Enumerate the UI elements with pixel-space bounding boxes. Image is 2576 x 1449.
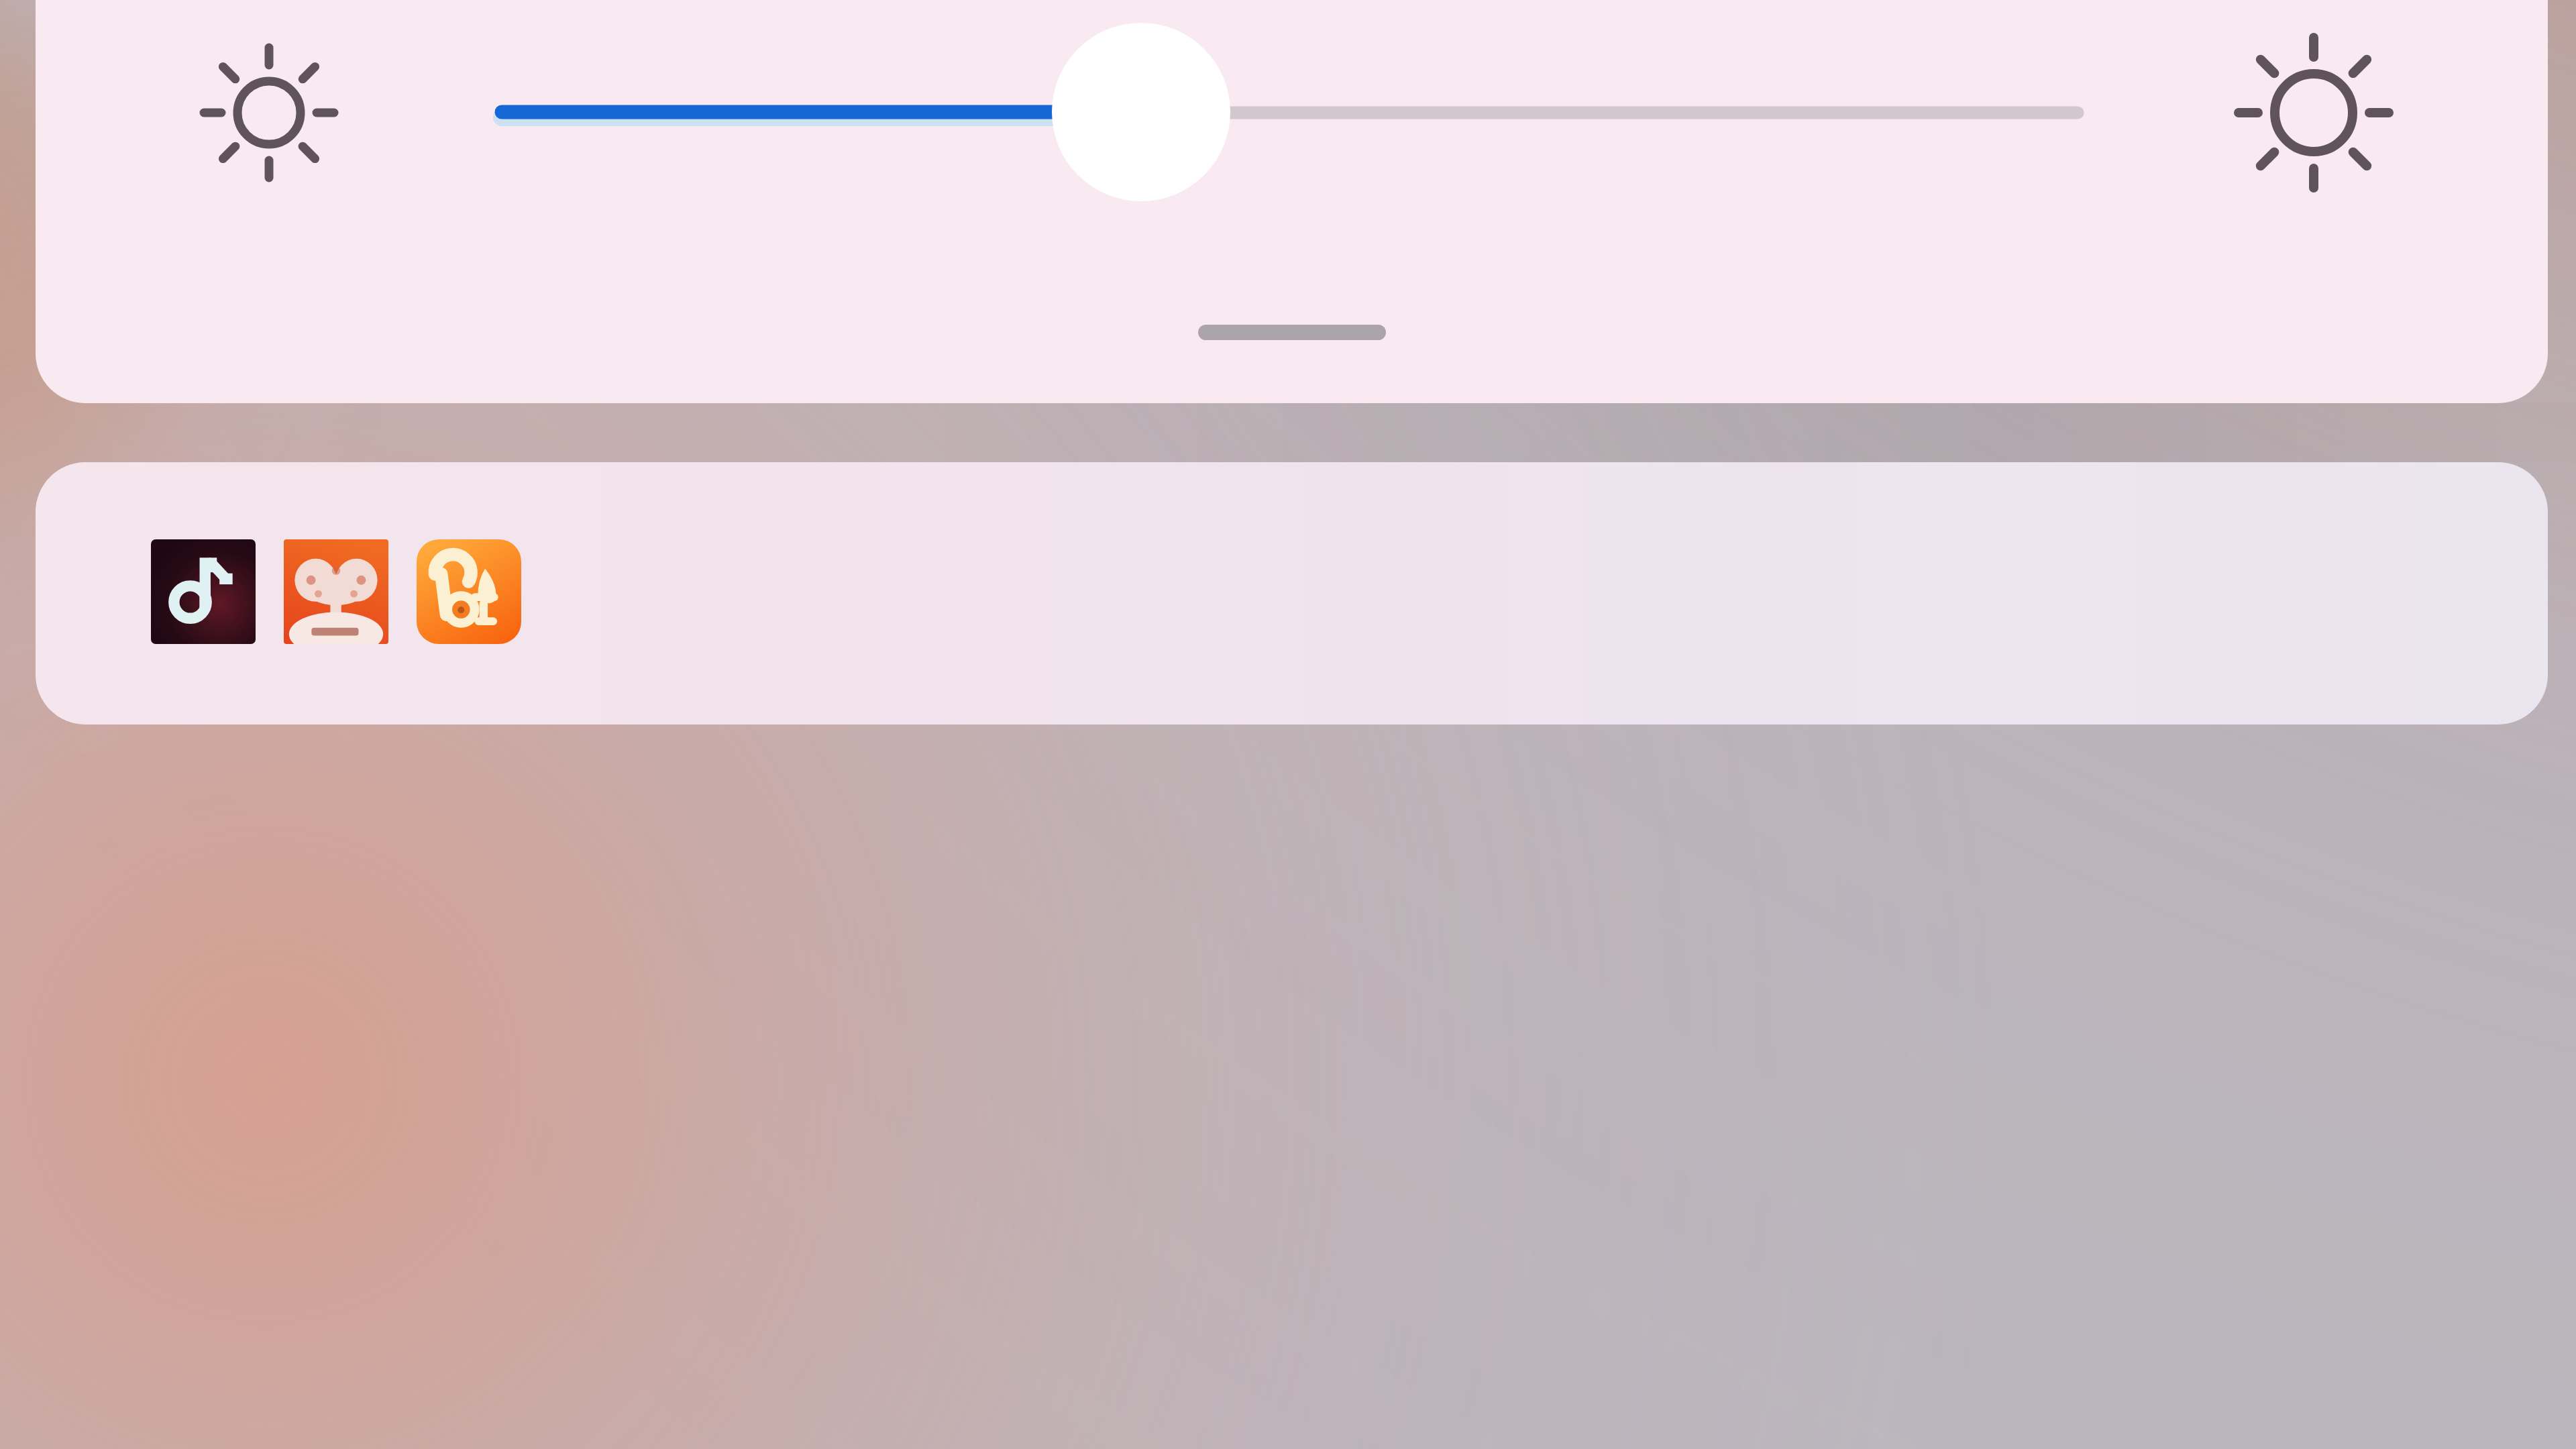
button[interactable]: Raise brightness xyxy=(2223,22,2404,203)
button[interactable]: Brightness level xyxy=(1052,23,1230,201)
button[interactable]: Xiaohongshu xyxy=(284,539,388,644)
button[interactable]: TikTok xyxy=(151,539,256,644)
button[interactable]: UC Browser xyxy=(417,539,521,644)
button[interactable]: Lower brightness xyxy=(189,32,350,193)
button[interactable]: Brightness slider xyxy=(465,25,2122,200)
